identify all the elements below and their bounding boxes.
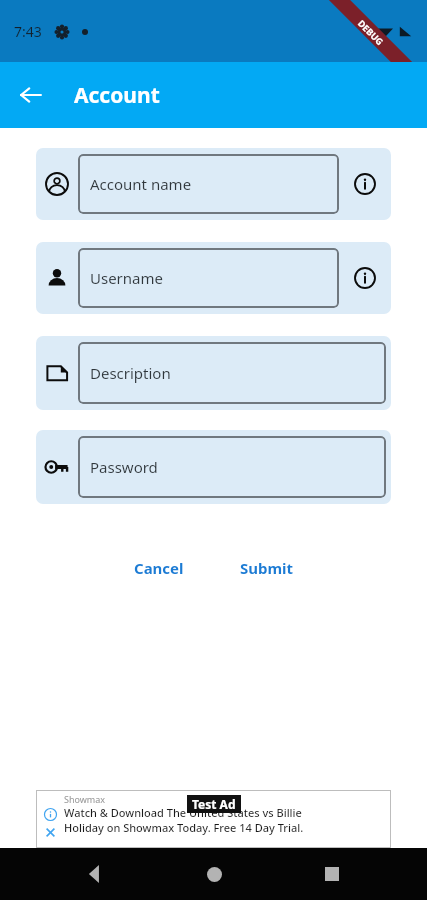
staticText: Test Ad	[192, 796, 236, 812]
staticText: Showmax	[64, 793, 106, 805]
button[interactable]: Home	[190, 850, 238, 898]
button[interactable]: Info	[339, 242, 391, 314]
button[interactable]: Back	[9, 73, 53, 117]
staticText: Description	[90, 363, 171, 383]
staticText: DEBUG	[356, 17, 386, 47]
button[interactable]: Description	[36, 336, 391, 410]
staticText: Submit	[240, 558, 294, 578]
staticText: Watch & Download The United States vs Bi…	[64, 805, 302, 820]
staticText: Holiday on Showmax Today. Free 14 Day Tr…	[64, 820, 304, 835]
button[interactable]: Info	[339, 148, 391, 220]
staticText: 7:43	[14, 22, 42, 41]
staticText: Account	[74, 81, 160, 110]
button[interactable]: Username	[78, 248, 339, 308]
button[interactable]: Back	[71, 850, 119, 898]
staticText: Username	[90, 268, 163, 288]
button[interactable]: Showmax	[36, 790, 391, 848]
button[interactable]: Account name	[78, 154, 339, 214]
button[interactable]: Account name	[36, 148, 391, 220]
button[interactable]: Password	[36, 430, 391, 504]
button[interactable]: Submit	[226, 550, 308, 586]
staticText: Account name	[90, 174, 192, 194]
button[interactable]: Description	[78, 342, 386, 404]
staticText: Password	[90, 457, 158, 477]
staticText: Cancel	[134, 558, 184, 578]
button[interactable]: Recents	[308, 850, 356, 898]
button[interactable]: Username	[36, 242, 391, 314]
button[interactable]: Cancel	[120, 550, 198, 586]
button[interactable]: Password	[78, 436, 386, 498]
